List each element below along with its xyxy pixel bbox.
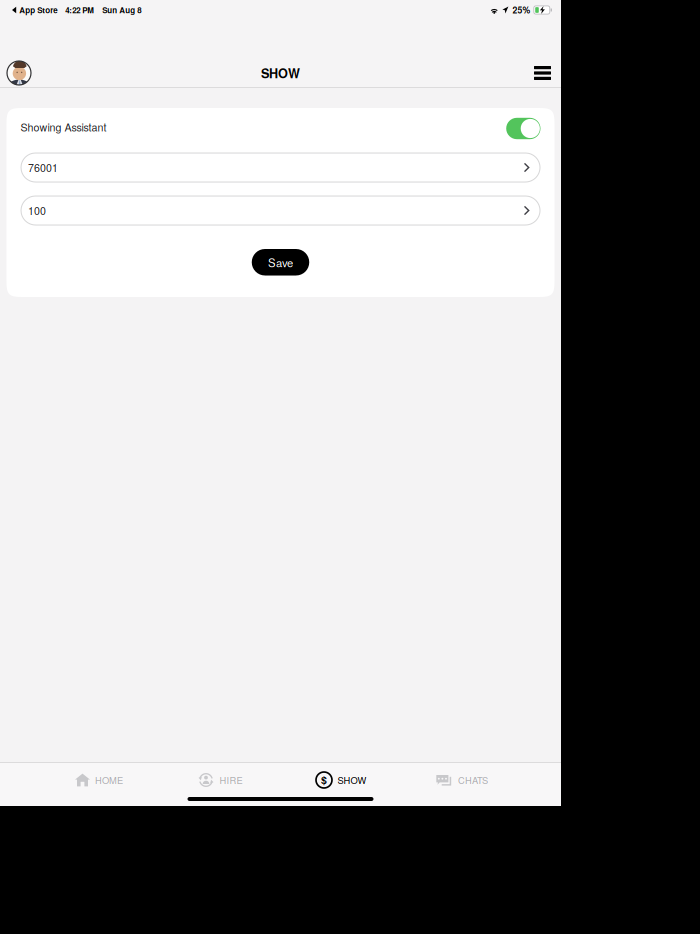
staticText: Sun Aug 8 (102, 4, 141, 16)
button[interactable]: Menu (524, 61, 561, 85)
staticText: App Store (19, 4, 57, 16)
staticText: CHATS (458, 773, 488, 787)
staticText: 4:22 PM (65, 4, 94, 16)
staticText: HOME (95, 773, 123, 787)
button[interactable]: CHATS (401, 763, 522, 796)
button[interactable]: $ (280, 763, 401, 796)
staticText: 76001 (28, 160, 58, 175)
staticText: Save (268, 254, 293, 270)
button[interactable]: Showing Assistant (506, 118, 540, 139)
button[interactable]: 76001 (21, 153, 540, 182)
button[interactable]: HIRE (159, 763, 280, 796)
button[interactable]: HOME (38, 763, 159, 796)
staticText: $ (321, 772, 327, 788)
staticText: SHOW (337, 773, 366, 787)
staticText: 100 (28, 203, 46, 218)
staticText: 25% (512, 4, 530, 16)
button[interactable]: Save (252, 249, 309, 275)
button[interactable]: 100 (21, 196, 540, 225)
button[interactable]: Profile (0, 58, 41, 88)
staticText: Showing Assistant (20, 119, 106, 135)
staticText: HIRE (219, 773, 242, 787)
staticText: SHOW (261, 64, 300, 82)
